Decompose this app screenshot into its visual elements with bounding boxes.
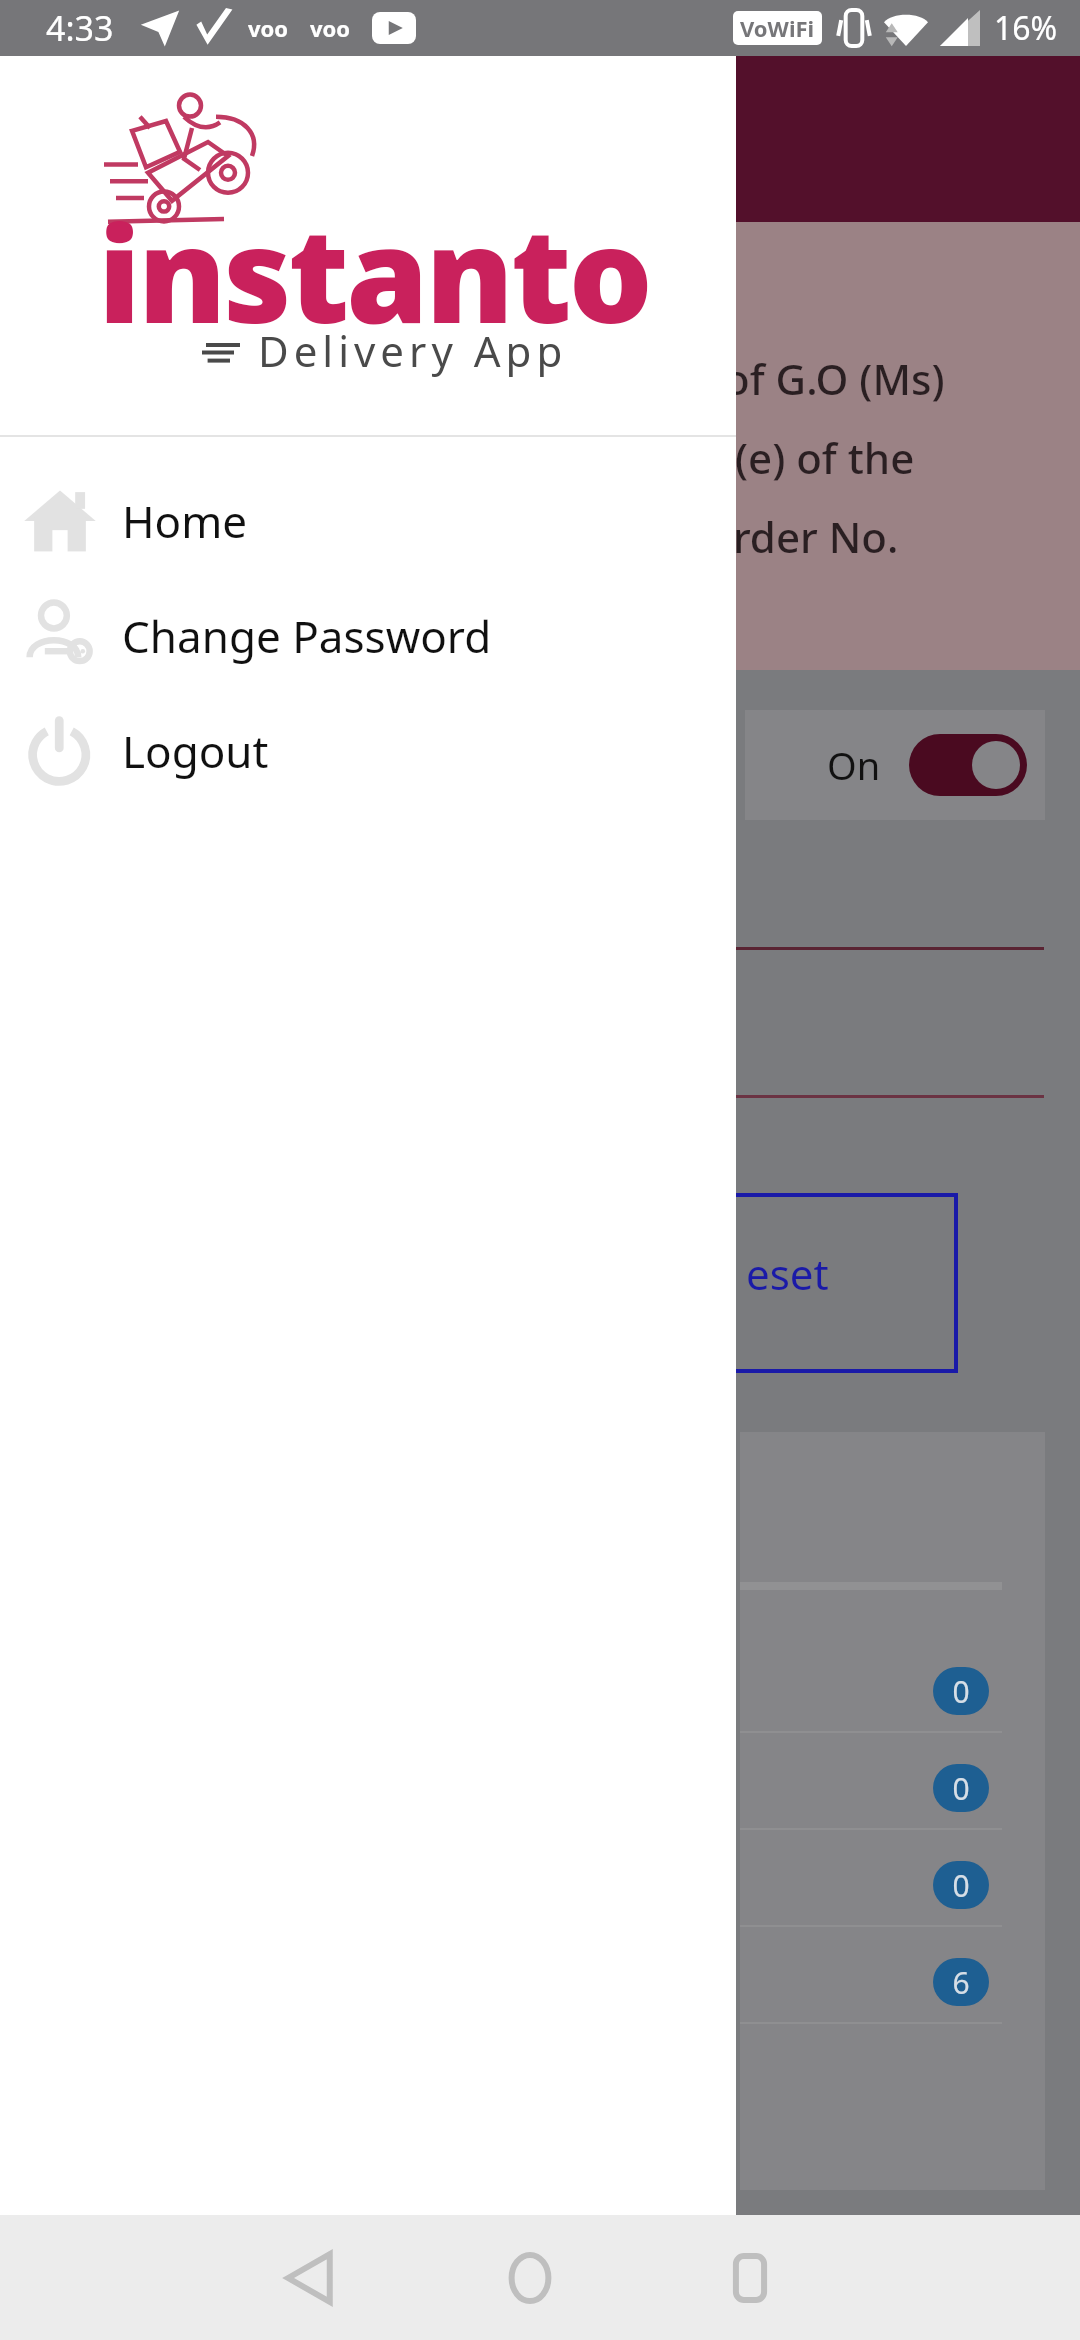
button[interactable]: Home xyxy=(0,463,736,578)
button[interactable]: Home xyxy=(470,2218,590,2338)
button[interactable]: Change Password xyxy=(0,578,736,693)
staticText: voot xyxy=(310,13,356,43)
staticText: VoWiFi xyxy=(740,13,815,43)
staticText: Change Password xyxy=(122,606,492,666)
staticText: instanto xyxy=(98,182,650,362)
staticText: On xyxy=(827,739,881,791)
staticText: 0 xyxy=(952,1865,970,1906)
staticText: voot xyxy=(248,13,294,43)
staticText: eset xyxy=(746,1245,829,1302)
staticText: 0 xyxy=(952,1768,970,1809)
staticText: Order No. xyxy=(700,508,899,565)
button[interactable]: Logout xyxy=(0,693,736,808)
button[interactable]: Back xyxy=(250,2218,370,2338)
staticText: 4 (e) of the xyxy=(700,429,915,486)
button[interactable]: Recent apps xyxy=(690,2218,810,2338)
button[interactable]: 0 xyxy=(933,1667,989,1715)
staticText: ) of G.O (Ms) xyxy=(700,350,945,407)
staticText: 16% xyxy=(994,6,1058,50)
staticText: Delivery App xyxy=(258,322,568,379)
button[interactable]: On xyxy=(745,710,1045,820)
button[interactable]: 0 xyxy=(933,1764,989,1812)
button[interactable]: 6 xyxy=(933,1958,989,2006)
staticText: Logout xyxy=(122,721,269,781)
staticText: 4:33 xyxy=(46,5,114,51)
staticText: 0 xyxy=(952,1671,970,1712)
staticText: Home xyxy=(122,491,248,551)
button[interactable]: 0 xyxy=(933,1861,989,1909)
staticText: 6 xyxy=(952,1962,970,2003)
button[interactable]: eset xyxy=(740,1195,956,1331)
